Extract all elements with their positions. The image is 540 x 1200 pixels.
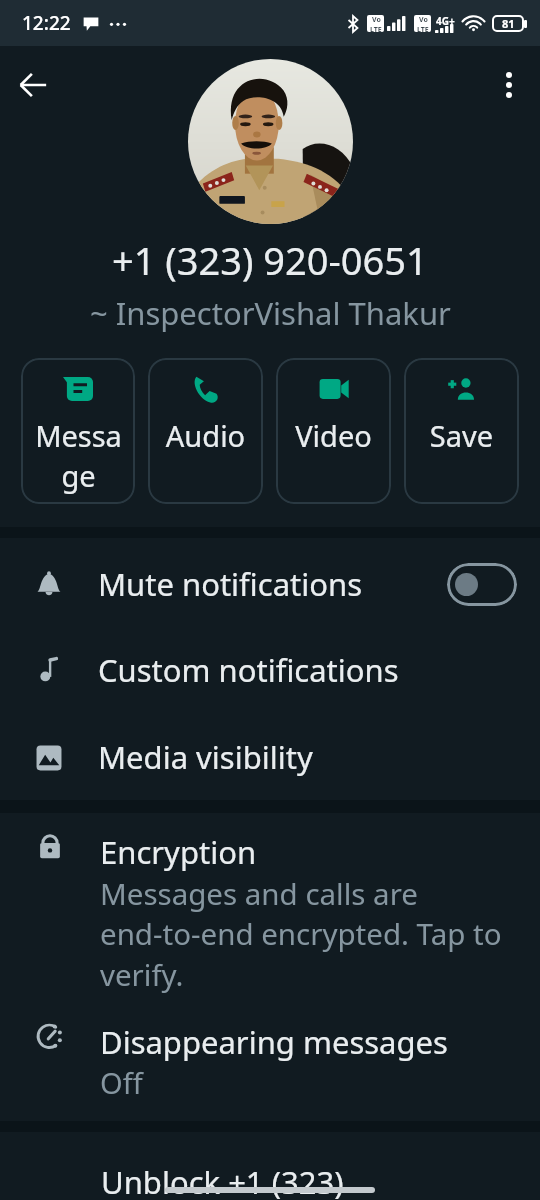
staticText: Disappearing messages <box>100 1021 448 1063</box>
staticText: Mute notifications <box>98 563 362 605</box>
staticText: 4G+ <box>436 14 455 28</box>
staticText: Vo <box>372 15 381 25</box>
staticText: Message <box>32 416 125 496</box>
button[interactable]: Back <box>11 63 55 107</box>
staticText: 81 <box>502 16 515 31</box>
staticText: Video <box>287 416 380 455</box>
staticText: Media visibility <box>98 736 313 778</box>
button[interactable]: Mute notifications <box>0 542 540 626</box>
staticText: Encryption <box>100 831 257 873</box>
staticText: Messages and calls are end-to-end encryp… <box>100 873 502 995</box>
staticText: +1 (323) 920-0651 <box>112 234 428 286</box>
staticText: Save <box>415 416 508 455</box>
button[interactable]: Message <box>21 358 135 504</box>
staticText: Audio <box>159 416 252 455</box>
staticText: Unblock +1 (323) <box>101 1161 344 1200</box>
staticText: LTE <box>417 25 429 32</box>
button[interactable]: Save <box>404 358 519 504</box>
button[interactable]: Mute notifications toggle, off <box>447 563 517 606</box>
button[interactable]: Unblock +1 (323) <box>0 1161 540 1200</box>
staticText: Vo <box>419 15 428 25</box>
button[interactable]: Custom notifications <box>0 626 540 714</box>
button[interactable]: Disappearing messages <box>0 1021 540 1121</box>
staticText: Off <box>100 1063 143 1102</box>
button[interactable]: Video <box>276 358 391 504</box>
button[interactable]: Encryption <box>0 831 540 1021</box>
staticText: Custom notifications <box>98 649 399 691</box>
staticText: LTE <box>370 25 382 32</box>
button[interactable]: Profile photo <box>188 59 353 224</box>
staticText: 12:22 <box>22 10 71 36</box>
button[interactable]: Audio <box>148 358 263 504</box>
button[interactable]: Media visibility <box>0 714 540 800</box>
button[interactable]: More options <box>487 63 531 107</box>
staticText: ~ InspectorVishal Thakur <box>90 292 451 334</box>
